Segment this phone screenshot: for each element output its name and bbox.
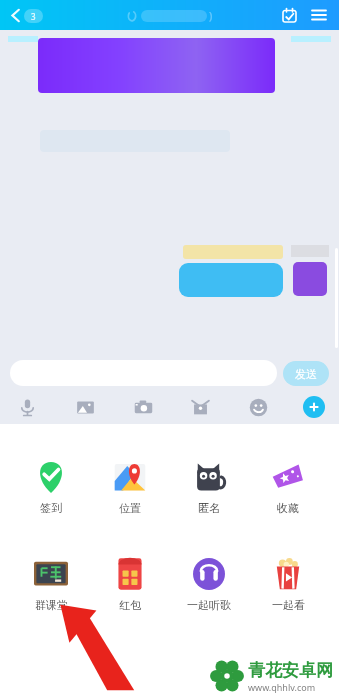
button[interactable]: 发送 [283, 361, 329, 386]
button[interactable]: 位置 [94, 458, 166, 517]
button[interactable]: 匿名 [173, 458, 245, 517]
staticText: 签到 [40, 501, 62, 515]
button[interactable]: 签到 [15, 458, 87, 517]
button[interactable]: Camera [130, 394, 156, 420]
button[interactable]: Voice [14, 394, 40, 420]
button[interactable]: Image [72, 394, 98, 420]
staticText: 青花安卓网 [248, 660, 333, 681]
staticText: 位置 [119, 501, 141, 515]
staticText: 一起看 [272, 598, 305, 612]
staticText: ) [209, 8, 213, 23]
staticText: 红包 [119, 598, 141, 612]
button[interactable]: Message input [10, 360, 277, 386]
staticText: 3 [31, 11, 36, 22]
button[interactable]: 红包 [94, 555, 166, 614]
button[interactable]: Emoji [245, 394, 271, 420]
staticText: 一起听歌 [187, 598, 231, 612]
staticText: 匿名 [198, 501, 220, 515]
button[interactable]: Tasks [278, 4, 301, 27]
button[interactable]: 群课堂 [15, 555, 87, 614]
button[interactable]: 一起看 [252, 555, 324, 614]
staticText: 发送 [295, 367, 317, 381]
staticText: 收藏 [277, 501, 299, 515]
button[interactable]: More [303, 396, 325, 418]
button[interactable]: Gift [187, 394, 213, 420]
staticText: 群课堂 [35, 598, 68, 612]
staticText: www.qhhlv.com [248, 681, 316, 693]
button[interactable]: 一起听歌 [173, 555, 245, 614]
button[interactable]: Back [6, 5, 47, 26]
button[interactable]: Menu [307, 3, 331, 27]
button[interactable]: 收藏 [252, 458, 324, 517]
